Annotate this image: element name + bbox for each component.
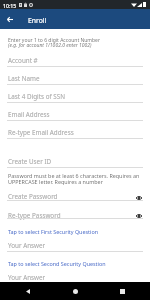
staticText: Enroll xyxy=(28,16,47,25)
staticText: Tap to select Second Security Question xyxy=(8,260,106,267)
staticText: Enter your 1 to 6 digit Account Number xyxy=(8,37,101,44)
button[interactable]: Your Answer xyxy=(7,239,143,252)
staticText: Your Answer xyxy=(8,241,46,250)
button[interactable]: Account # xyxy=(7,54,143,67)
button[interactable]: Create Password xyxy=(7,188,143,201)
button[interactable]: Create User ID xyxy=(7,155,143,168)
staticText: Your Answer xyxy=(8,273,46,282)
staticText: Last Name xyxy=(8,74,40,83)
staticText: Re-type Email Address xyxy=(8,128,74,137)
button[interactable]: Re-type Password xyxy=(7,206,143,219)
staticText: Create Password xyxy=(8,192,58,201)
button[interactable]: Recent apps xyxy=(116,285,128,297)
button[interactable]: Back xyxy=(2,11,18,27)
button[interactable]: Home xyxy=(69,285,81,297)
button[interactable]: Last Name xyxy=(7,72,143,85)
other: Show password xyxy=(136,195,142,201)
staticText: (e.g. for account 1/1002.0 enter 1002) xyxy=(8,42,92,49)
button[interactable]: Re-type Email Address xyxy=(7,126,143,139)
staticText: Tap to select First Security Question xyxy=(8,228,98,235)
button[interactable]: Email Address xyxy=(7,108,143,121)
button[interactable]: Last 4 Digits of SSN xyxy=(7,90,143,103)
button[interactable]: Your Answer xyxy=(7,271,143,283)
button[interactable]: Tap to select Second Security Question xyxy=(7,257,143,270)
staticText: 10:15 xyxy=(3,2,17,9)
staticText: Re-type Password xyxy=(8,211,61,220)
staticText: Last 4 Digits of SSN xyxy=(8,92,65,101)
staticText: Create User ID xyxy=(8,157,52,166)
button[interactable]: Tap to select First Security Question xyxy=(7,225,143,238)
staticText: Password must be at least 6 characters. … xyxy=(8,172,144,185)
staticText: Account # xyxy=(8,56,38,65)
staticText: Email Address xyxy=(8,110,50,119)
other: Show password xyxy=(136,213,142,219)
button[interactable]: Back xyxy=(22,285,34,297)
